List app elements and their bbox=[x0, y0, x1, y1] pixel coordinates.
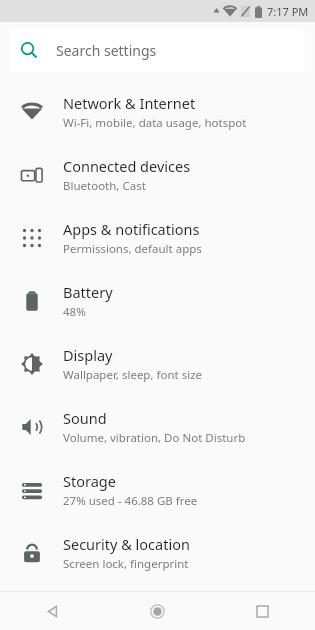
staticText: Search settings bbox=[56, 41, 157, 60]
button[interactable]: Network & Internet bbox=[0, 80, 315, 143]
staticText: Apps & notifications bbox=[63, 219, 200, 239]
staticText: Volume, vibration, Do Not Disturb bbox=[63, 430, 246, 446]
staticText: Network & Internet bbox=[63, 93, 196, 113]
staticText: Display bbox=[63, 345, 113, 365]
staticText: 27% used - 46.88 GB free bbox=[63, 493, 198, 509]
button[interactable]: Storage bbox=[0, 458, 315, 521]
staticText: Wi-Fi, mobile, data usage, hotspot bbox=[63, 115, 247, 131]
button[interactable]: Security & location bbox=[0, 521, 315, 584]
button[interactable]: Apps & notifications bbox=[0, 206, 315, 269]
staticText: Security & location bbox=[63, 534, 190, 554]
staticText: Connected devices bbox=[63, 156, 191, 176]
staticText: 7:17 PM bbox=[267, 4, 309, 19]
button[interactable]: Back bbox=[0, 592, 105, 630]
button[interactable]: Home bbox=[105, 592, 210, 630]
staticText: Bluetooth, Cast bbox=[63, 178, 146, 194]
staticText: Screen lock, fingerprint bbox=[63, 556, 189, 572]
button[interactable]: Connected devices bbox=[0, 143, 315, 206]
staticText: Storage bbox=[63, 471, 116, 491]
button[interactable]: Recent apps bbox=[210, 592, 315, 630]
staticText: Battery bbox=[63, 282, 113, 302]
button[interactable]: Display bbox=[0, 332, 315, 395]
staticText: Wallpaper, sleep, font size bbox=[63, 367, 203, 383]
button[interactable]: Sound bbox=[0, 395, 315, 458]
button[interactable]: Search settings bbox=[10, 28, 305, 72]
staticText: Sound bbox=[63, 408, 107, 428]
staticText: 48% bbox=[63, 304, 86, 320]
button[interactable]: Battery bbox=[0, 269, 315, 332]
staticText: Permissions, default apps bbox=[63, 241, 202, 257]
